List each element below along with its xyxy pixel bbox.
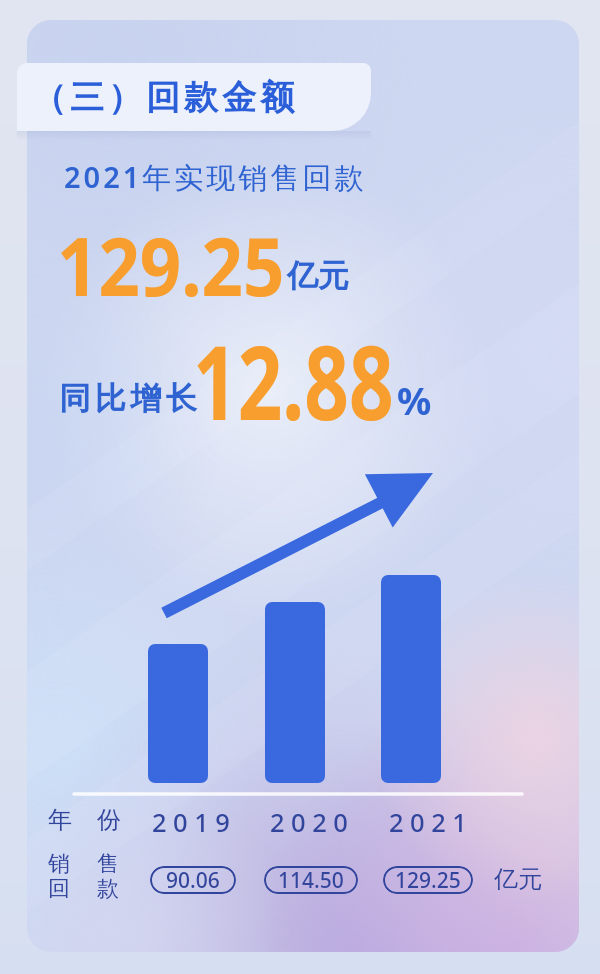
staticText: 款 <box>97 875 119 903</box>
staticText: 2020 <box>270 805 355 840</box>
staticText: 12.88 <box>193 310 394 450</box>
staticText: 售 <box>97 850 119 878</box>
staticText: 亿元 <box>494 864 542 894</box>
staticText: 同比增长 <box>57 379 199 418</box>
staticText: 129.25 <box>57 210 285 319</box>
staticText: 份 <box>97 805 121 835</box>
staticText: 年 <box>48 805 72 835</box>
staticText: 回 <box>48 875 70 903</box>
button[interactable]: 114.50 <box>264 866 358 894</box>
staticText: 2021年实现销售回款 <box>64 157 367 197</box>
button[interactable]: （三）回款金额 <box>17 63 371 131</box>
staticText: （三）回款金额 <box>30 76 296 119</box>
staticText: % <box>397 374 432 426</box>
staticText: 90.06 <box>166 866 220 894</box>
button[interactable]: 129.25 <box>383 866 473 894</box>
button[interactable]: 90.06 <box>150 866 236 894</box>
staticText: 114.50 <box>278 866 344 894</box>
staticText: 2021 <box>389 805 474 840</box>
staticText: 2019 <box>152 805 237 840</box>
staticText: 亿元 <box>287 256 349 295</box>
staticText: 销 <box>48 850 70 878</box>
staticText: 129.25 <box>395 866 461 894</box>
